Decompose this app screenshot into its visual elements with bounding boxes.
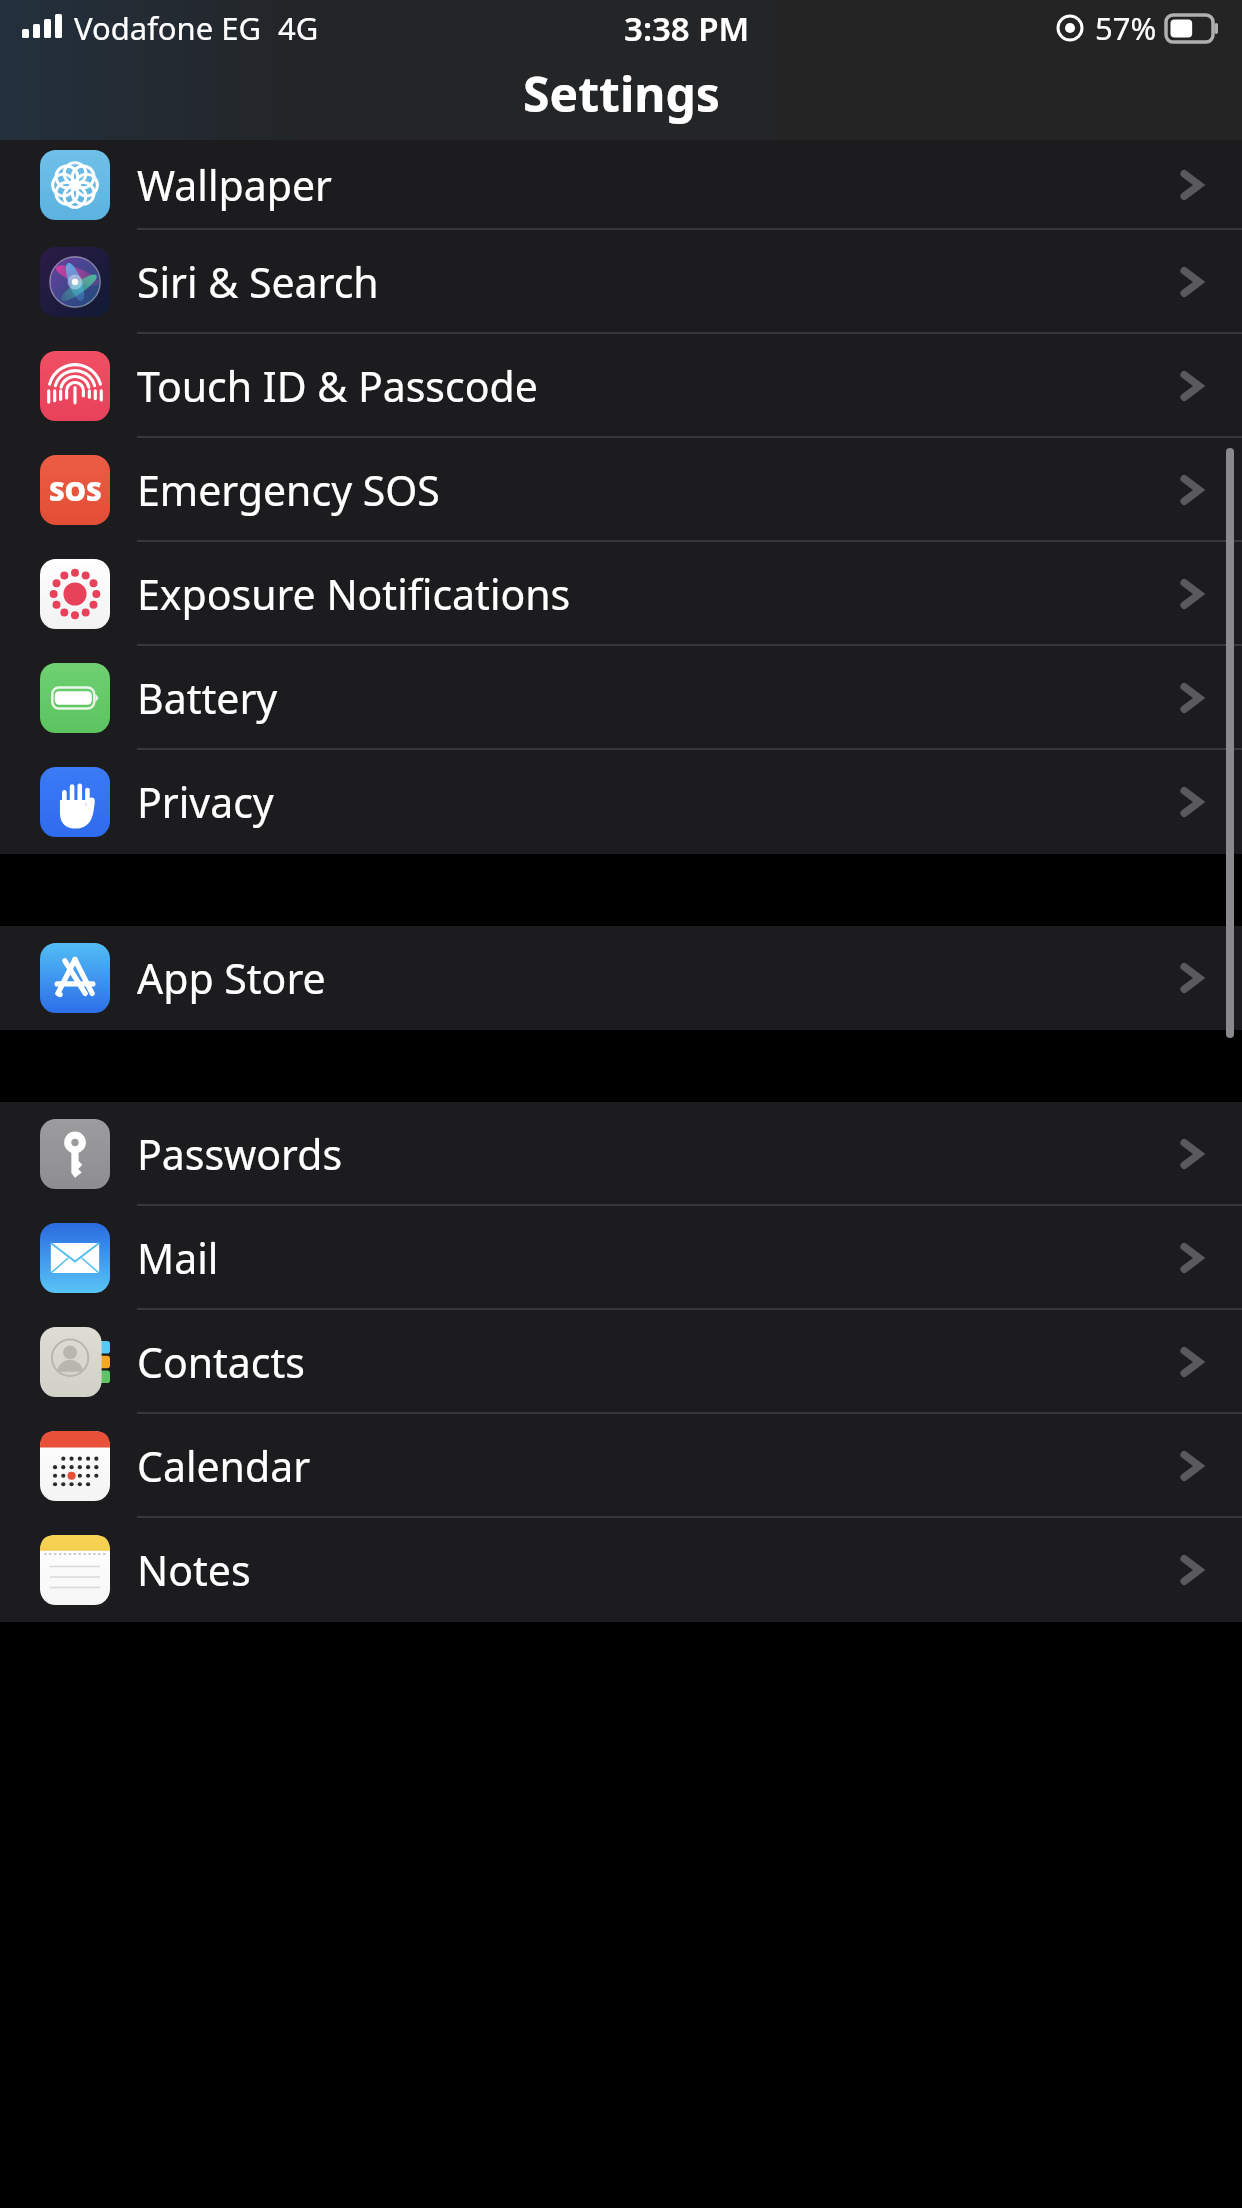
button[interactable]: Touch ID & Passcode	[0, 334, 1242, 438]
staticText: Wallpaper	[137, 157, 332, 213]
staticText: SOS	[49, 472, 102, 509]
staticText: Calendar	[137, 1438, 311, 1494]
button[interactable]: Siri & Search	[0, 230, 1242, 334]
staticText: Battery	[137, 670, 278, 726]
staticText: Touch ID & Passcode	[137, 358, 538, 414]
staticText: Emergency SOS	[137, 462, 440, 518]
staticText: Vodafone EG	[74, 7, 262, 49]
staticText: Exposure Notifications	[137, 566, 571, 622]
button[interactable]: Privacy	[0, 750, 1242, 854]
staticText: App Store	[137, 950, 326, 1006]
staticText: 4G	[278, 7, 319, 49]
staticText: 57%	[1095, 7, 1157, 49]
staticText: Contacts	[137, 1334, 305, 1390]
button[interactable]: Contacts	[0, 1310, 1242, 1414]
button[interactable]: Exposure Notifications	[0, 542, 1242, 646]
button[interactable]: Notes	[0, 1518, 1242, 1622]
button[interactable]: Wallpaper	[0, 140, 1242, 230]
button[interactable]: Mail	[0, 1206, 1242, 1310]
button[interactable]: Battery	[0, 646, 1242, 750]
staticText: 3:38 PM	[624, 6, 750, 51]
staticText: Privacy	[137, 774, 274, 830]
staticText: Notes	[137, 1542, 251, 1598]
staticText: Siri & Search	[137, 254, 379, 310]
staticText: Passwords	[137, 1126, 343, 1182]
button[interactable]: App Store	[0, 926, 1242, 1030]
button[interactable]: SOS	[0, 438, 1242, 542]
button[interactable]: Passwords	[0, 1102, 1242, 1206]
staticText: Mail	[137, 1230, 219, 1286]
button[interactable]: Calendar	[0, 1414, 1242, 1518]
staticText: Settings	[523, 61, 720, 126]
